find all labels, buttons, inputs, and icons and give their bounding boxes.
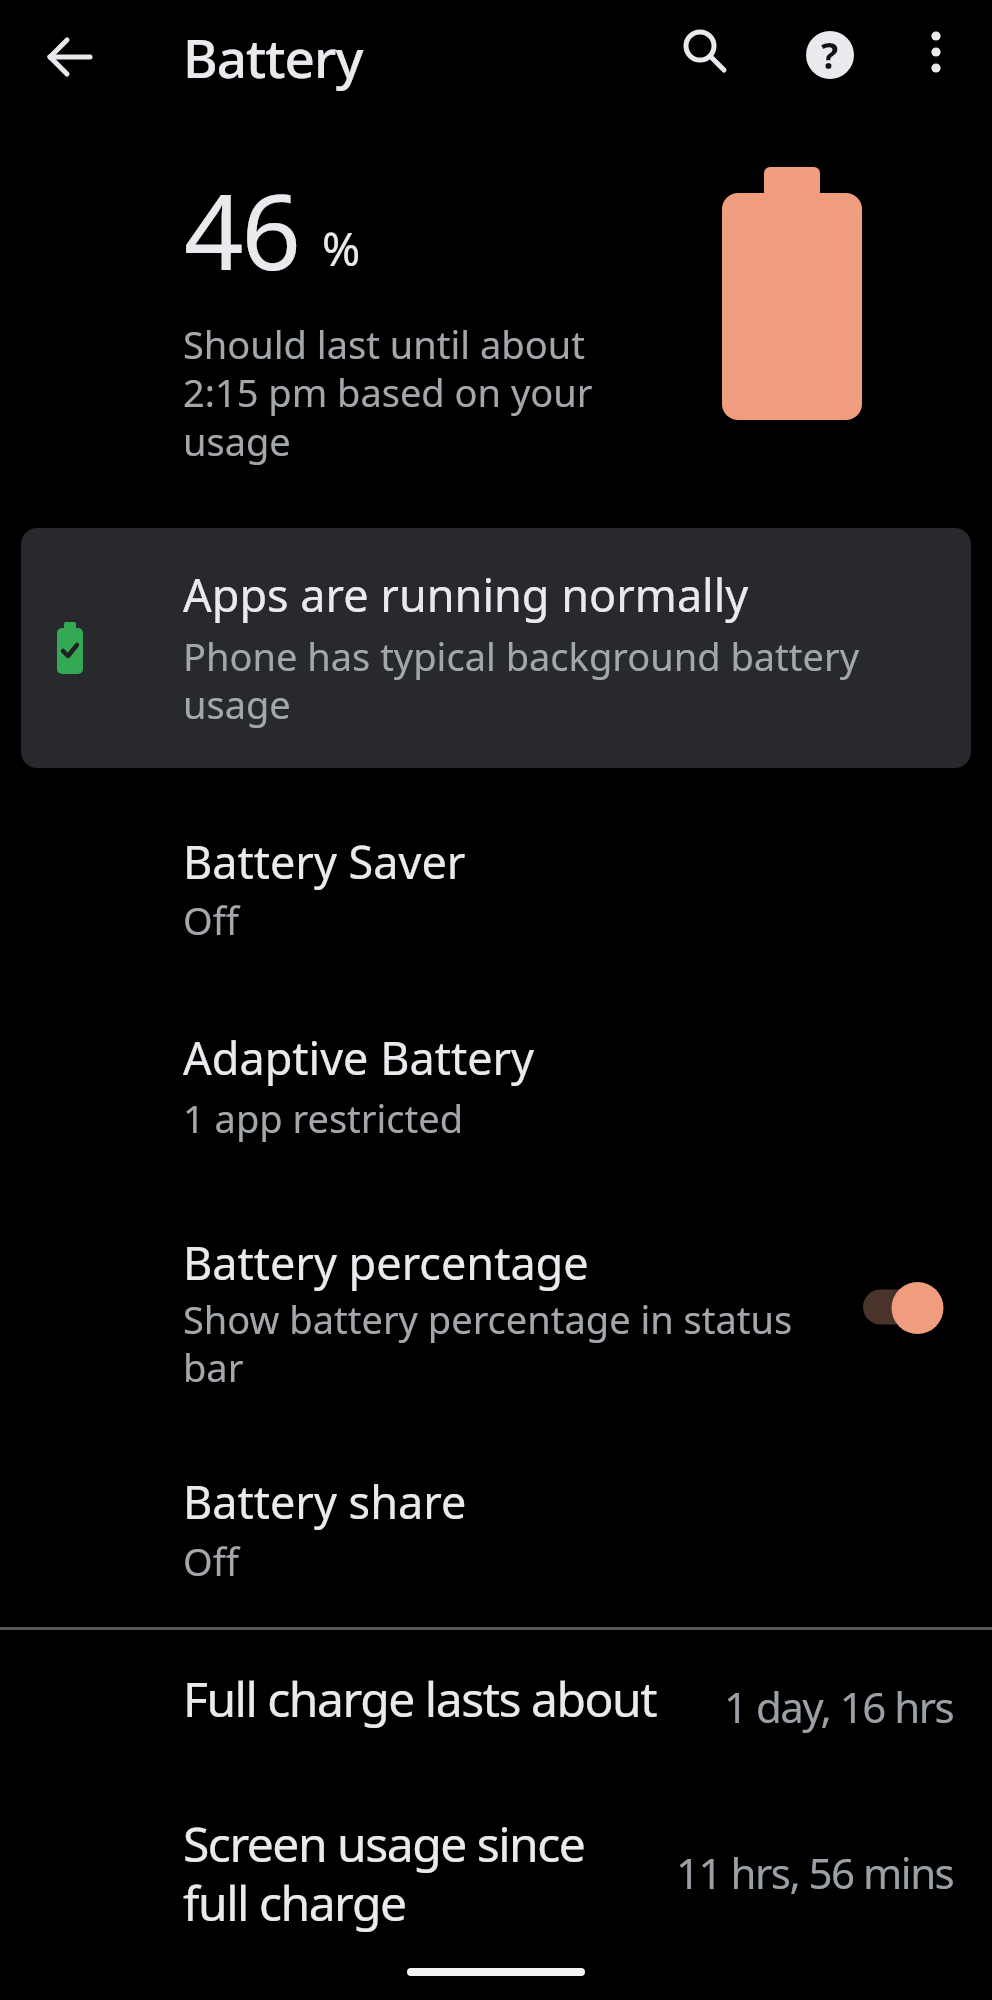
button[interactable]: Battery Saver [0, 818, 992, 948]
staticText: 46 [184, 159, 299, 301]
staticText: Battery percentage [183, 1232, 589, 1293]
button[interactable]: Adaptive Battery [0, 1014, 992, 1144]
staticText: Adaptive Battery [183, 1027, 535, 1088]
button[interactable]: Screen usage since full charge [0, 1800, 992, 1950]
button[interactable] [853, 1272, 953, 1344]
staticText: Should last until about 2:15 pm based on… [183, 318, 593, 468]
staticText: Off [183, 894, 239, 946]
button[interactable] [35, 22, 105, 92]
staticText: 11 hrs, 56 mins [676, 1844, 954, 1901]
staticText: 1 day, 16 hrs [724, 1678, 954, 1735]
button[interactable]: Full charge lasts about [0, 1660, 992, 1750]
staticText: ? [821, 31, 839, 80]
staticText: Phone has typical background battery usa… [183, 630, 860, 731]
button[interactable]: Apps are running normally [21, 528, 971, 768]
staticText: Apps are running normally [183, 564, 749, 625]
staticText: Screen usage since full charge [183, 1811, 585, 1935]
button[interactable]: ? [792, 17, 868, 93]
button[interactable] [901, 17, 971, 87]
staticText: Full charge lasts about [183, 1666, 656, 1731]
button[interactable]: Battery percentage [0, 1214, 992, 1404]
staticText: 1 app restricted [183, 1092, 464, 1144]
staticText: Battery Saver [183, 831, 466, 892]
staticText: Show battery percentage in status bar [183, 1293, 793, 1394]
staticText: Battery share [183, 1471, 467, 1532]
button[interactable] [667, 15, 743, 91]
staticText: Battery [183, 21, 363, 93]
staticText: Off [183, 1535, 239, 1587]
button[interactable]: Battery share [0, 1458, 992, 1588]
staticText: % [322, 217, 361, 280]
